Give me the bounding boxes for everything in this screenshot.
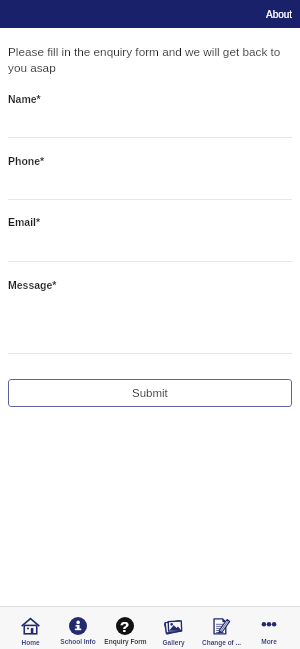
- button[interactable]: School Info: [54, 610, 101, 649]
- staticText: School Info: [60, 638, 96, 645]
- button[interactable]: Gallery: [149, 610, 197, 649]
- staticText: Change of ...: [202, 639, 241, 646]
- button[interactable]: ?: [101, 610, 149, 649]
- button[interactable]: About: [257, 5, 300, 23]
- button[interactable]: Change of ...: [197, 610, 245, 649]
- button[interactable]: Home: [7, 610, 54, 649]
- staticText: Submit: [132, 387, 168, 400]
- staticText: Email*: [8, 216, 41, 228]
- staticText: More: [261, 638, 277, 645]
- staticText: Name*: [8, 93, 41, 105]
- staticText: Phone*: [8, 155, 45, 167]
- button[interactable]: Submit: [8, 379, 292, 407]
- staticText: About: [266, 9, 293, 20]
- staticText: Enquiry Form: [104, 638, 147, 645]
- staticText: Gallery: [162, 639, 185, 646]
- button[interactable]: More: [245, 610, 293, 649]
- staticText: Home: [21, 639, 40, 646]
- staticText: ?: [120, 618, 130, 635]
- staticText: Message*: [8, 279, 57, 291]
- staticText: Please fill in the enquiry form and we w…: [8, 45, 292, 74]
